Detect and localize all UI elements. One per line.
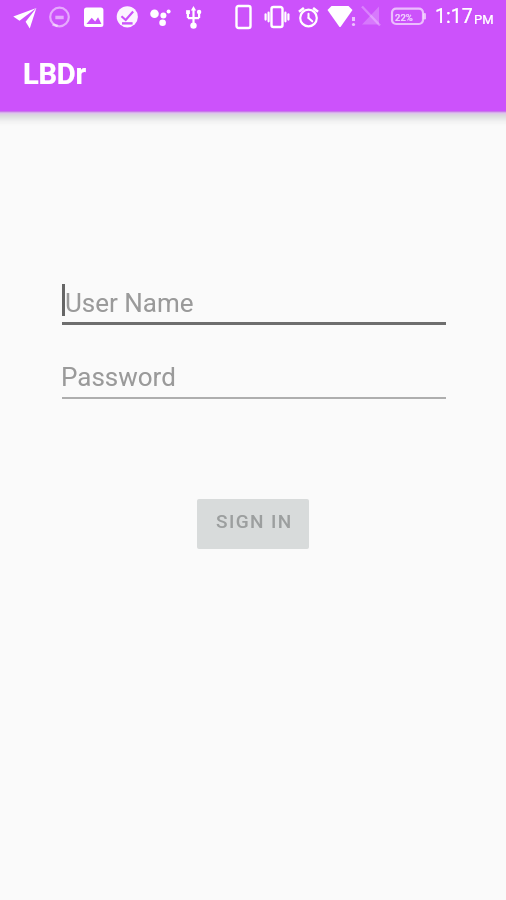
staticText: LBDr (23, 57, 86, 91)
other: Status bar (0, 0, 506, 34)
staticText: Password (61, 362, 176, 392)
staticText: SIGN IN (216, 510, 293, 532)
button[interactable]: Password (62, 356, 446, 399)
staticText: User Name (65, 288, 194, 318)
staticText: 1:17 (435, 5, 473, 28)
staticText: PM (474, 12, 494, 27)
button[interactable]: User Name (62, 283, 446, 325)
button[interactable]: SIGN IN (197, 499, 309, 549)
staticText: 22% (395, 12, 413, 23)
